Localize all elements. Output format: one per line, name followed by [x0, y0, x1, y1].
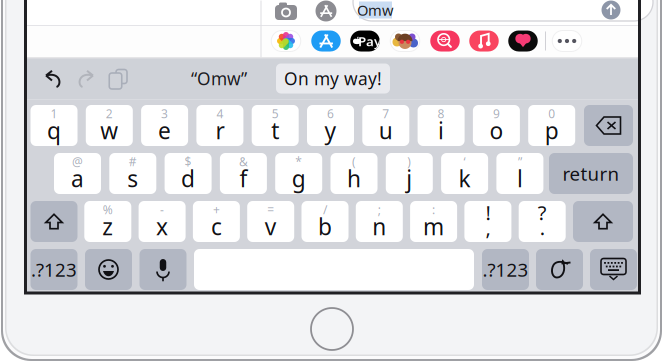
button[interactable]: On my way!	[276, 63, 390, 93]
button[interactable]: Paste	[108, 68, 127, 89]
button[interactable]: Photos	[271, 30, 301, 51]
button[interactable]: Digital Touch	[508, 30, 538, 51]
button[interactable]: Images	[430, 30, 460, 51]
button[interactable]: Camera	[275, 1, 297, 20]
staticText: i	[438, 115, 444, 145]
button[interactable]: Handwriting	[536, 249, 583, 290]
staticText: l	[517, 163, 523, 193]
button[interactable]: More apps	[552, 30, 582, 51]
button[interactable]: ‘	[441, 153, 488, 194]
button[interactable]: Dictation	[139, 249, 186, 290]
staticText: c	[211, 211, 222, 241]
staticText: b	[318, 211, 332, 241]
button[interactable]: 3	[141, 105, 188, 146]
button[interactable]: 2	[86, 105, 133, 146]
staticText: m	[423, 211, 444, 241]
staticText: f	[239, 163, 247, 193]
button[interactable]: Redo	[76, 70, 95, 88]
button[interactable]: :	[410, 201, 457, 242]
button[interactable]: !	[464, 201, 511, 242]
button[interactable]: )	[386, 153, 433, 194]
staticText: o	[489, 115, 503, 145]
button[interactable]: 5	[252, 105, 299, 146]
staticText: .?123	[482, 257, 528, 282]
button[interactable]: .?123	[482, 249, 529, 290]
staticText: Pay	[358, 32, 381, 50]
staticText: v	[265, 211, 277, 241]
button[interactable]: return	[549, 153, 633, 194]
staticText: return	[562, 161, 619, 186]
button[interactable]: =	[247, 201, 294, 242]
staticText: !	[485, 199, 490, 226]
button[interactable]: 8	[418, 105, 465, 146]
button[interactable]: .?123	[30, 249, 77, 290]
staticText: k	[459, 163, 471, 193]
staticText: 8	[438, 105, 445, 121]
staticText: &	[239, 153, 248, 169]
button[interactable]: Music	[469, 30, 499, 51]
staticText: %	[103, 201, 113, 217]
staticText: 0	[548, 105, 555, 121]
button[interactable]: 6	[307, 105, 354, 146]
button[interactable]: $	[165, 153, 212, 194]
staticText: g	[292, 163, 306, 193]
staticText: “Omw”	[191, 67, 247, 90]
button[interactable]: 0	[528, 105, 575, 146]
staticText: u	[379, 115, 393, 145]
button[interactable]: Delete	[584, 105, 633, 146]
staticText: )	[407, 153, 411, 169]
button[interactable]: ”	[496, 153, 543, 194]
staticText: *	[295, 153, 302, 169]
staticText: d	[181, 163, 195, 193]
staticText: n	[372, 211, 386, 241]
staticText: @	[72, 153, 83, 169]
staticText: (	[352, 153, 356, 169]
button[interactable]: 1	[30, 105, 77, 146]
staticText: h	[347, 163, 361, 193]
staticText: z	[102, 211, 113, 241]
button[interactable]: 4	[196, 105, 243, 146]
staticText: ‘	[464, 153, 466, 169]
button[interactable]: Send	[600, 0, 621, 20]
staticText: w	[100, 115, 118, 145]
button[interactable]: iMessage apps	[315, 0, 337, 22]
staticText: j	[406, 163, 412, 193]
button[interactable]: Shift	[573, 201, 633, 242]
button[interactable]: Memoji	[390, 30, 420, 51]
button[interactable]: &	[220, 153, 267, 194]
button[interactable]: 9	[473, 105, 520, 146]
staticText: x	[156, 211, 168, 241]
button[interactable]: Undo	[43, 70, 62, 88]
staticText: $	[185, 153, 192, 169]
button[interactable]: Apple Pay	[350, 30, 380, 51]
button[interactable]: /	[301, 201, 348, 242]
button[interactable]: +	[193, 201, 240, 242]
button[interactable]: ?	[519, 201, 566, 242]
staticText: ;	[378, 201, 381, 217]
button[interactable]: Shift	[30, 201, 77, 242]
staticText: s	[127, 163, 138, 193]
staticText: 2	[106, 105, 113, 121]
staticText: On my way!	[284, 67, 382, 90]
button[interactable]: *	[275, 153, 322, 194]
staticText: ,	[485, 214, 490, 241]
staticText: Omw	[357, 0, 394, 20]
button[interactable]: ;	[356, 201, 403, 242]
staticText: 9	[493, 105, 500, 121]
button[interactable]: (	[330, 153, 377, 194]
staticText: .?123	[31, 257, 77, 282]
staticText: y	[324, 115, 336, 145]
staticText: +	[213, 201, 220, 217]
staticText: 5	[272, 105, 279, 121]
button[interactable]: #	[109, 153, 156, 194]
button[interactable]: Hide keyboard	[590, 249, 637, 290]
staticText: 7	[382, 105, 389, 121]
button[interactable]: App Store	[311, 30, 341, 51]
button[interactable]: @	[54, 153, 101, 194]
button[interactable]: %	[84, 201, 131, 242]
button[interactable]: Emoji	[85, 249, 132, 290]
button[interactable]: -	[139, 201, 186, 242]
button[interactable]: 7	[362, 105, 409, 146]
staticText: .	[540, 214, 545, 241]
